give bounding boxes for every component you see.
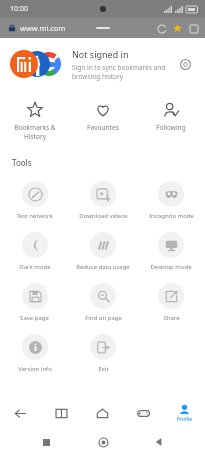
staticText: Exit: [98, 365, 109, 373]
button[interactable]: Account settings: [175, 54, 195, 74]
button[interactable]: Not signed in: [0, 38, 205, 90]
staticText: Profile: [177, 416, 193, 423]
staticText: Favourites: [87, 123, 119, 132]
staticText: Version info: [18, 365, 52, 373]
staticText: Desktop mode: [150, 263, 192, 271]
staticText: Test network: [16, 212, 53, 220]
staticText: Bookmarks & History: [14, 123, 56, 141]
button[interactable]: Desktop mode: [137, 227, 205, 278]
button[interactable]: Reload: [155, 22, 168, 35]
button[interactable]: Home: [92, 431, 114, 453]
button[interactable]: Bookmarks & History: [0, 96, 69, 147]
button[interactable]: Download videos: [69, 176, 137, 227]
staticText: Dark mode: [19, 263, 51, 271]
staticText: Save page: [20, 314, 49, 322]
button[interactable]: Find on page: [69, 278, 137, 329]
staticText: Find on page: [85, 314, 122, 322]
button[interactable]: Games: [123, 398, 164, 428]
button[interactable]: Incognito mode: [137, 176, 205, 227]
button[interactable]: Reduce data usage: [69, 227, 137, 278]
button[interactable]: Version info: [0, 329, 69, 380]
staticText: 10:00: [10, 4, 28, 14]
button[interactable]: Back: [0, 398, 41, 428]
staticText: Following: [156, 123, 186, 132]
button[interactable]: Dark mode: [0, 227, 69, 278]
button[interactable]: Bookmark: [171, 22, 184, 35]
staticText: Download videos: [79, 212, 128, 220]
button[interactable]: Favourites: [69, 96, 137, 138]
button[interactable]: Tabs: [187, 22, 200, 35]
button[interactable]: Share: [137, 278, 205, 329]
button[interactable]: Recents: [35, 431, 57, 453]
button[interactable]: Bookmarks: [41, 398, 82, 428]
button[interactable]: Exit: [69, 329, 137, 380]
button[interactable]: Profile: [164, 398, 205, 428]
staticText: www.mi.com: [20, 23, 66, 33]
button[interactable]: Save page: [0, 278, 69, 329]
staticText: Not signed in: [72, 48, 129, 60]
staticText: Sign in to sync bookmarks and browsing h…: [72, 63, 166, 81]
button[interactable]: Home: [82, 398, 123, 428]
staticText: Reduce data usage: [76, 263, 130, 271]
staticText: Tools: [12, 157, 32, 168]
staticText: Incognito mode: [149, 212, 194, 220]
button[interactable]: Following: [137, 96, 205, 138]
button[interactable]: Back: [148, 431, 170, 453]
staticText: Share: [163, 314, 180, 322]
button[interactable]: Test network: [0, 176, 69, 227]
